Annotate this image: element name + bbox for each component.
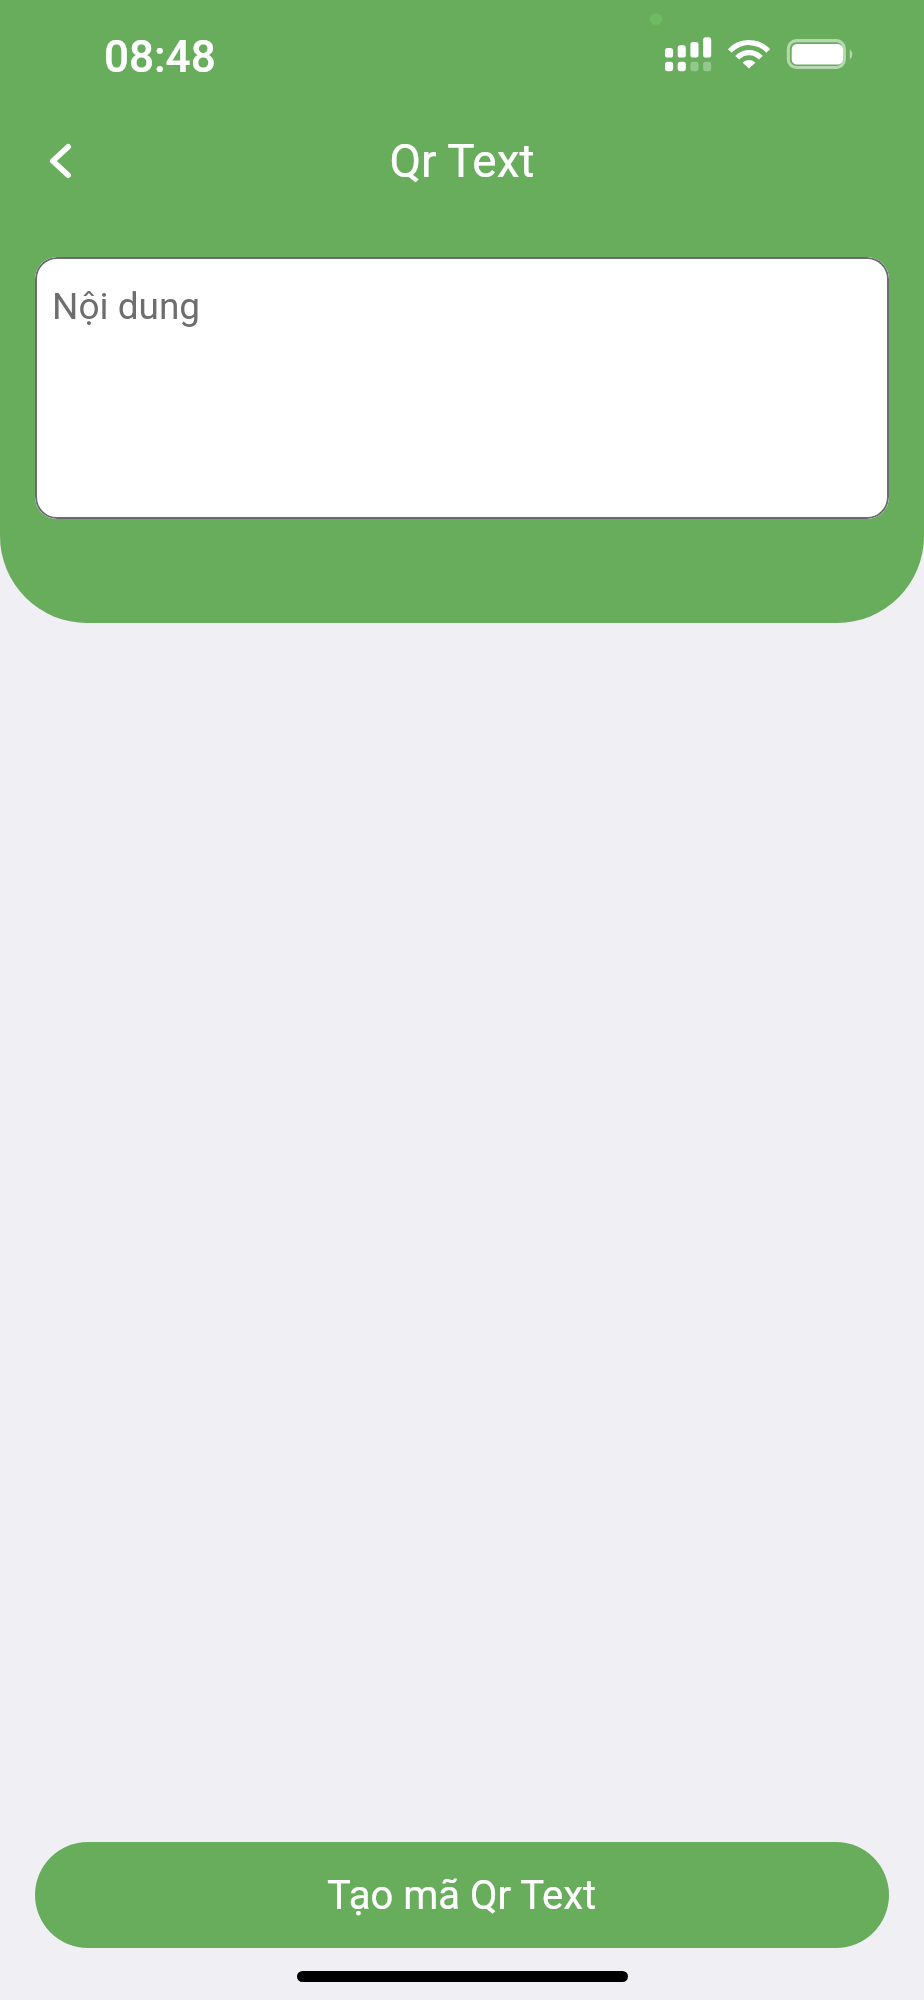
staticText: Nội dung	[52, 285, 201, 328]
staticText: Tạo mã Qr Text	[327, 1872, 597, 1919]
button[interactable]: Nội dung	[35, 257, 889, 519]
button[interactable]: Tạo mã Qr Text	[35, 1842, 889, 1948]
staticText: 08:48	[104, 31, 216, 83]
button[interactable]: Back	[10, 111, 110, 211]
staticText: Qr Text	[0, 134, 924, 188]
